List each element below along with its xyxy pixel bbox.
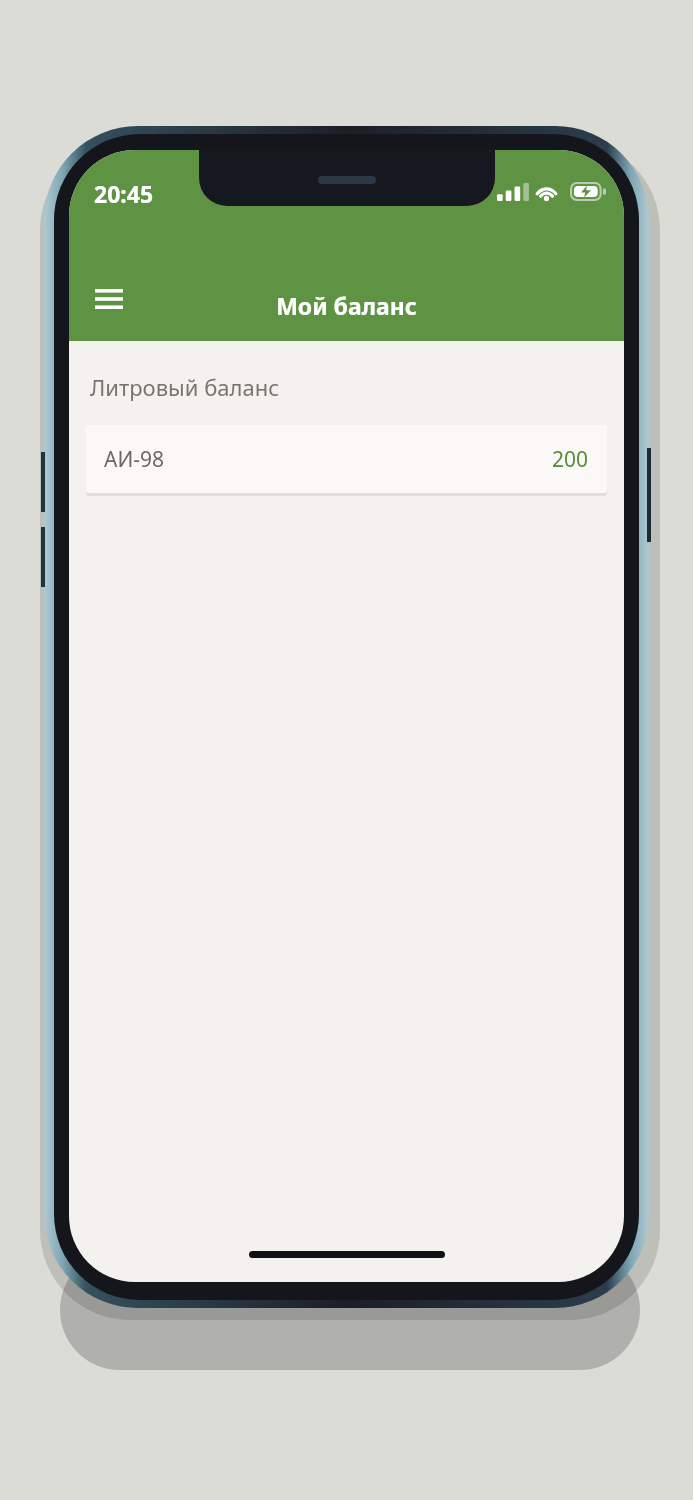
button[interactable]: АИ-98 — [86, 425, 607, 493]
staticText: Литровый баланс — [90, 372, 280, 402]
staticText: АИ-98 — [104, 445, 165, 474]
staticText: Мой баланс — [276, 290, 417, 321]
button[interactable]: Open navigation menu — [75, 265, 143, 333]
staticText: 200 — [552, 445, 589, 474]
staticText: 20:45 — [94, 178, 154, 209]
